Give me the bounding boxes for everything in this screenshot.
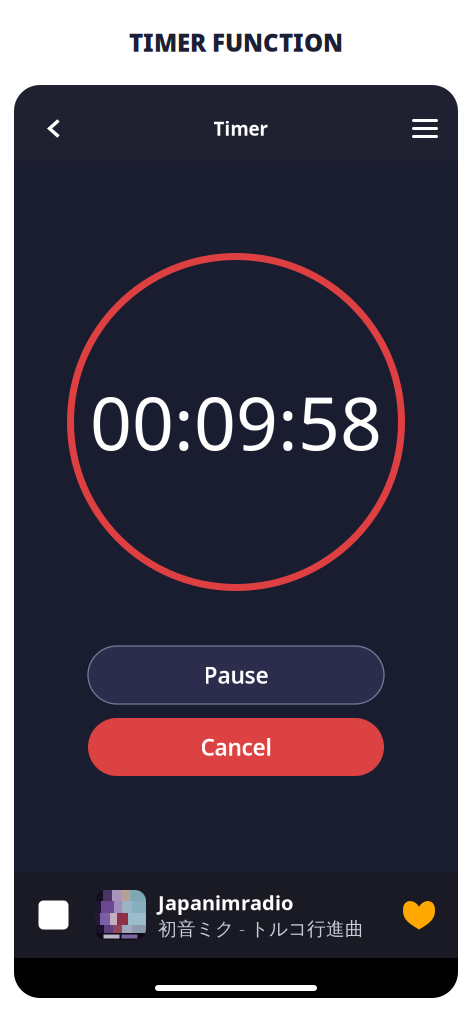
button[interactable]: Menu [403,106,447,150]
staticText: TIMER FUNCTION [129,27,343,58]
staticText: Timer [213,116,267,141]
staticText: 00:09:58 [90,373,382,471]
button[interactable]: Japanimradio [95,889,364,941]
button[interactable]: Stop [27,884,80,946]
button[interactable]: Favorite [394,884,444,946]
staticText: 初音ミク - トルコ行進曲 [158,916,364,941]
staticText: Japanimradio [158,889,294,916]
button[interactable]: Back [32,106,76,150]
staticText: Pause [203,660,268,690]
staticText: Cancel [200,732,271,762]
button[interactable]: Pause [88,646,384,704]
button[interactable]: Cancel [88,718,384,776]
